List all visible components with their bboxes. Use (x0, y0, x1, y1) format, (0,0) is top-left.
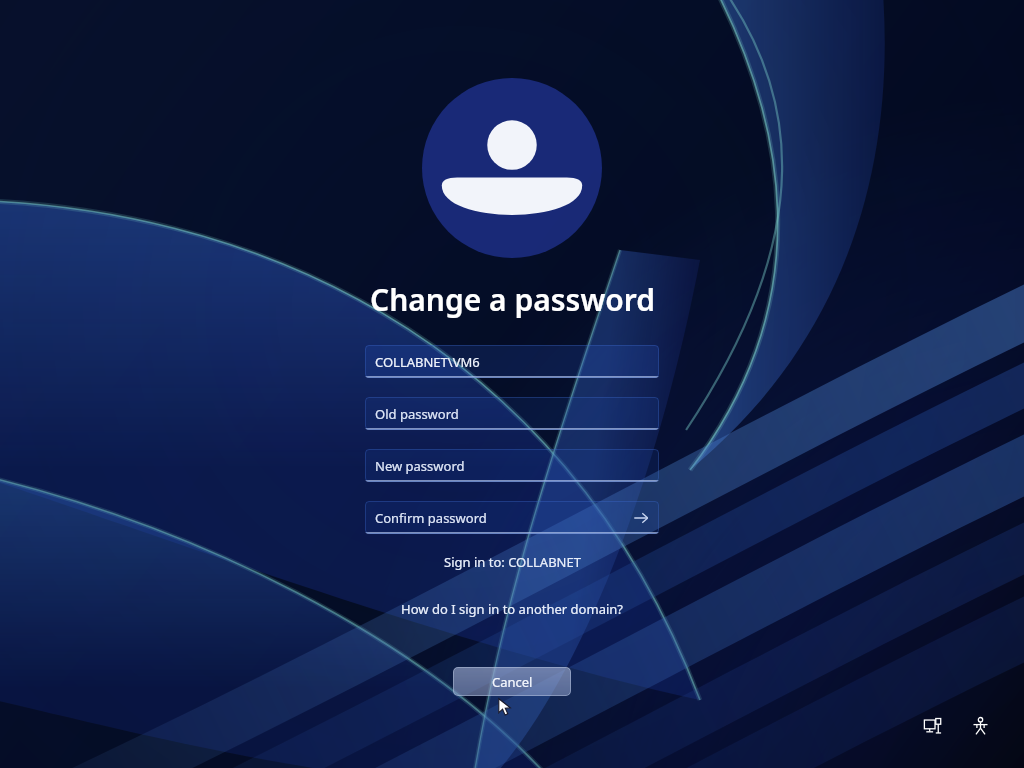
staticText: How do I sign in to another domain? (401, 600, 623, 618)
staticText: Sign in to: COLLABNET (444, 553, 581, 571)
button[interactable]: Network (917, 710, 949, 742)
button[interactable]: Accessibility (964, 710, 996, 742)
staticText: New password (375, 457, 465, 475)
staticText: Cancel (492, 673, 533, 691)
staticText: Old password (375, 405, 459, 423)
button[interactable]: Old password (365, 397, 659, 430)
staticText: Confirm password (375, 509, 487, 527)
button[interactable]: COLLABNET\VM6 (365, 345, 659, 378)
staticText: Change a password (370, 279, 655, 320)
button[interactable]: Submit (629, 506, 653, 530)
button[interactable]: New password (365, 449, 659, 482)
staticText: COLLABNET\VM6 (375, 353, 480, 371)
button[interactable]: Confirm password (365, 501, 659, 534)
button[interactable]: How do I sign in to another domain? (395, 598, 629, 620)
button[interactable]: Cancel (453, 667, 571, 696)
